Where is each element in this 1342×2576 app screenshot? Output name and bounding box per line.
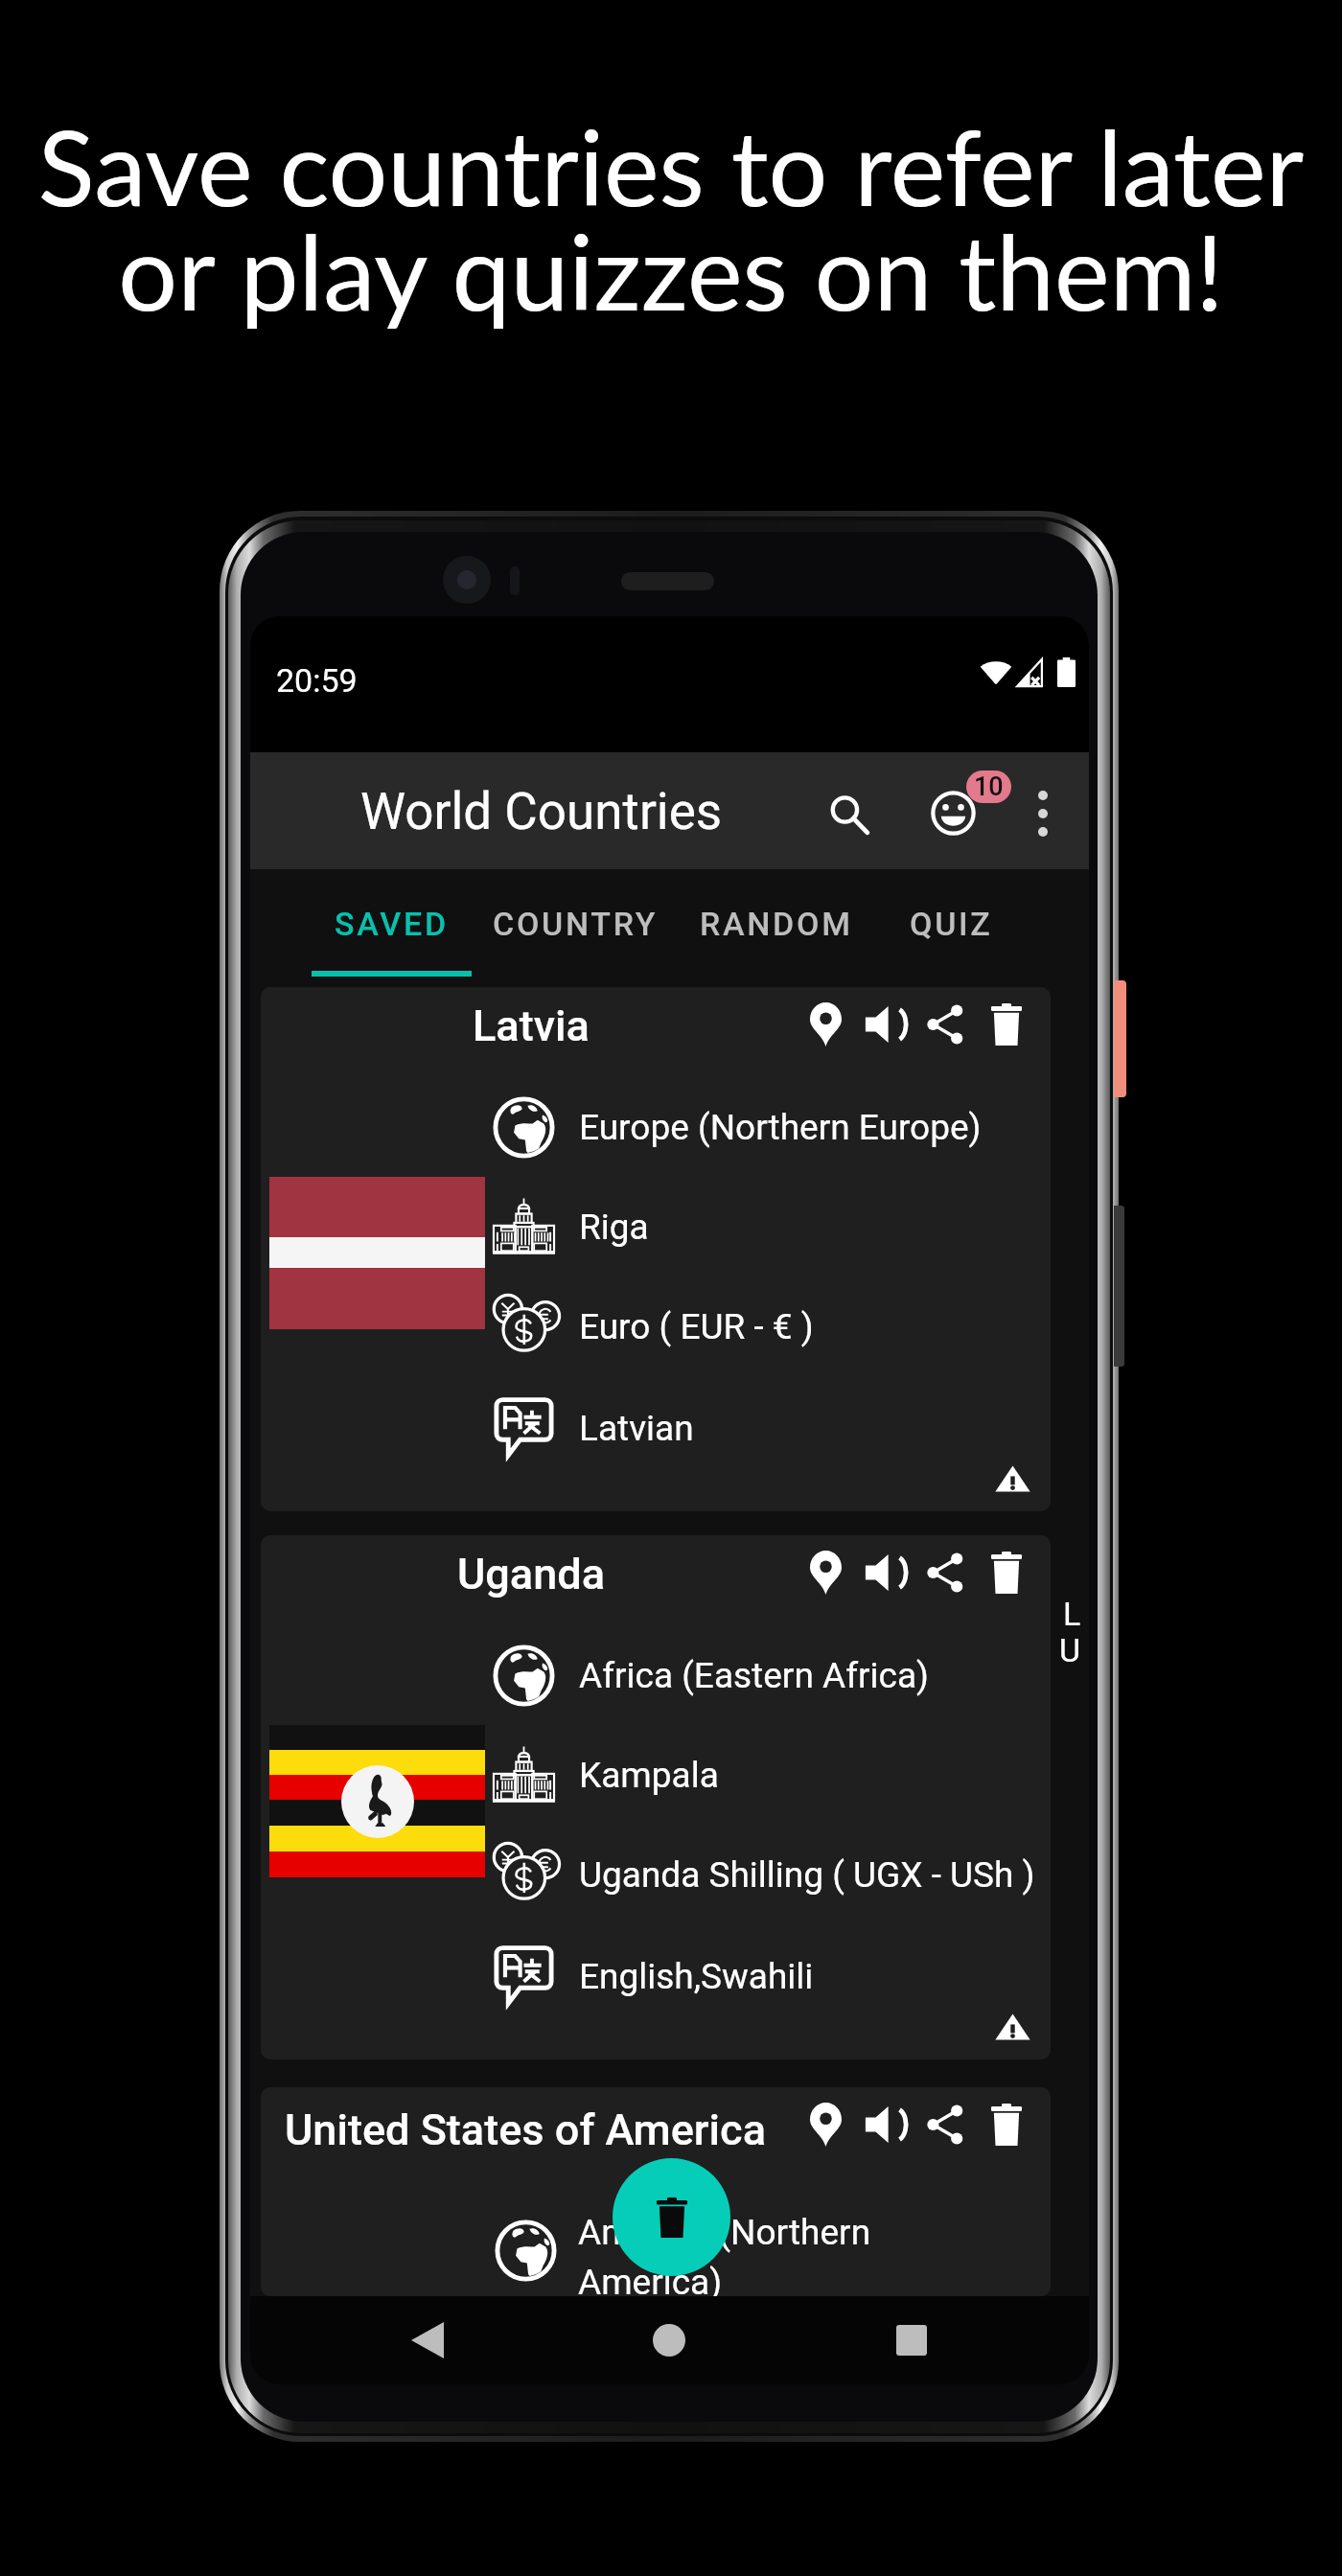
staticText: Riga (579, 1207, 649, 1248)
staticText: Kampala (579, 1755, 719, 1796)
staticText: United States of America (285, 2104, 767, 2155)
button[interactable]: Pronounce (853, 993, 918, 1055)
staticText: Uganda (457, 1549, 606, 1599)
staticText: Uganda Shilling ( UGX - USh ) (579, 1854, 1035, 1896)
staticText: World Countries (360, 782, 723, 841)
button[interactable]: Delete (974, 2093, 1039, 2155)
button[interactable]: Location (793, 993, 858, 1055)
button[interactable]: Share (913, 2093, 978, 2155)
button[interactable]: Back (389, 2302, 466, 2379)
button[interactable]: Mood (914, 774, 991, 851)
button[interactable]: More options (1005, 775, 1081, 852)
staticText: Africa (Eastern Africa) (579, 1655, 929, 1696)
button[interactable]: Search (810, 775, 887, 852)
button[interactable]: Location (793, 1541, 858, 1603)
button[interactable]: Share (913, 1541, 978, 1603)
button[interactable]: Delete (974, 993, 1039, 1055)
button[interactable]: Location (793, 2093, 858, 2155)
staticText: English,Swahili (579, 1956, 814, 1997)
staticText: L (1063, 1595, 1081, 1631)
staticText: 10 (974, 771, 1004, 802)
staticText: Save countries to refer later or play qu… (0, 103, 1342, 333)
button[interactable]: Latvia (261, 987, 1051, 1511)
button[interactable]: Delete (974, 1541, 1039, 1603)
button[interactable]: Uganda (261, 1535, 1051, 2059)
button[interactable]: COUNTRY (470, 869, 681, 984)
button[interactable]: RANDOM (671, 869, 882, 984)
staticText: Latvia (473, 1000, 590, 1051)
staticText: COUNTRY (493, 905, 659, 943)
button[interactable]: SAVED (286, 869, 497, 984)
button[interactable]: QUIZ (845, 869, 1056, 984)
button[interactable]: Delete all (613, 2158, 730, 2276)
button[interactable]: L (1053, 1595, 1086, 1631)
staticText: SAVED (335, 905, 449, 943)
button[interactable]: Recents (873, 2302, 950, 2379)
staticText: QUIZ (910, 905, 993, 943)
button[interactable]: United States of America (261, 2087, 1051, 2296)
staticText: RANDOM (700, 905, 853, 943)
button[interactable]: Share (913, 993, 978, 1055)
staticText: U (1059, 1631, 1081, 1667)
button[interactable]: U (1053, 1631, 1086, 1667)
button[interactable]: Pronounce (853, 2093, 918, 2155)
button[interactable]: Pronounce (853, 1541, 918, 1603)
button[interactable]: Home (631, 2302, 707, 2379)
staticText: Europe (Northern Europe) (579, 1107, 982, 1148)
staticText: Latvian (579, 1408, 694, 1449)
staticText: 20:59 (276, 661, 358, 700)
staticText: America (Northern America) (578, 2212, 937, 2296)
staticText: Euro ( EUR - € ) (579, 1306, 814, 1347)
